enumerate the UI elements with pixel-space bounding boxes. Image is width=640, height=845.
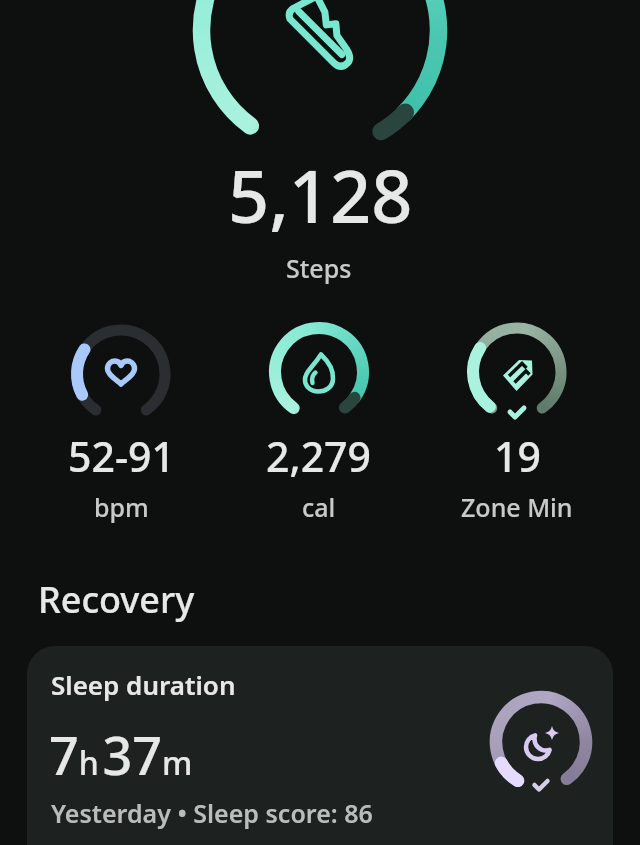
staticText: 5,128 [228,146,413,244]
button[interactable]: 19 [407,306,627,536]
button[interactable]: 52-91 [11,306,231,536]
staticText: 7h 37m [49,719,193,790]
staticText: cal [302,490,336,524]
staticText: Steps [286,251,352,285]
staticText: 52-91 [68,428,175,484]
staticText: bpm [94,490,149,524]
staticText: 2,279 [266,428,372,484]
staticText: Recovery [38,575,195,624]
staticText: 19 [494,428,541,484]
button[interactable]: 2,279 [209,306,429,536]
button[interactable] [27,646,613,845]
staticText: Yesterday • Sleep score: 86 [51,796,373,830]
staticText: Zone Min [461,490,573,524]
staticText: Sleep duration [51,667,236,702]
button[interactable] [185,0,455,290]
